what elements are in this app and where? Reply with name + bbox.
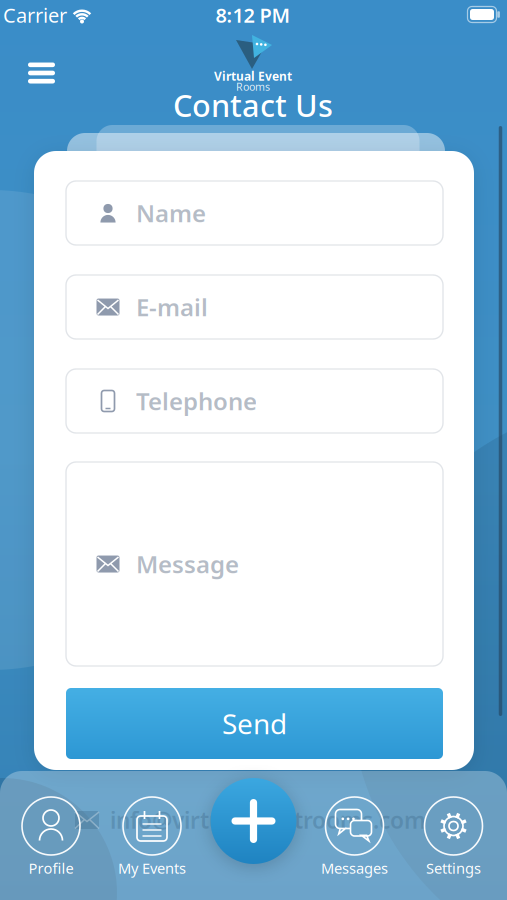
button[interactable]: Send xyxy=(66,688,443,759)
staticText: Settings xyxy=(426,858,481,878)
button[interactable]: E-mail xyxy=(66,275,443,339)
button[interactable]: Settings xyxy=(408,797,498,875)
staticText: Carrier xyxy=(3,2,67,28)
button[interactable]: Message xyxy=(66,462,443,666)
staticText: Rooms xyxy=(236,79,270,94)
staticText: info@virtualeventrooms.com xyxy=(110,805,426,835)
staticText: Messages xyxy=(321,858,388,878)
button[interactable]: Profile xyxy=(6,797,96,875)
button[interactable]: Telephone xyxy=(66,369,443,433)
staticText: Name xyxy=(136,197,206,229)
button[interactable]: My Events xyxy=(107,797,197,875)
staticText: Message xyxy=(136,548,239,580)
staticText: Send xyxy=(222,705,287,742)
staticText: My Events xyxy=(118,858,186,878)
staticText: 8:12 PM xyxy=(215,2,290,28)
button[interactable]: Name xyxy=(66,181,443,245)
staticText: Virtual Event xyxy=(214,68,292,84)
staticText: Contact Us xyxy=(173,85,333,125)
button[interactable]: Add xyxy=(210,778,296,864)
staticText: Profile xyxy=(28,858,73,878)
staticText: E-mail xyxy=(136,291,208,323)
button[interactable]: Messages xyxy=(309,797,399,875)
button[interactable]: Menu xyxy=(19,53,63,93)
staticText: Telephone xyxy=(136,385,257,417)
